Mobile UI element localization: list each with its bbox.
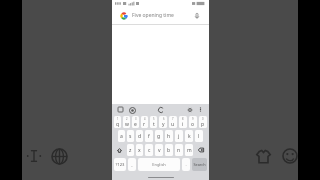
button[interactable]: c <box>145 144 153 156</box>
staticText: i <box>182 121 184 128</box>
staticText: 3 <box>135 117 137 121</box>
button[interactable]: h <box>165 130 173 142</box>
button[interactable]: 5 <box>150 116 157 128</box>
button[interactable]: f <box>145 130 153 142</box>
staticText: 7 <box>172 117 174 121</box>
button[interactable]: . <box>182 158 190 171</box>
staticText: v <box>158 147 161 154</box>
staticText: , <box>131 162 133 168</box>
button[interactable]: n <box>175 144 183 156</box>
staticText: 2 <box>126 117 128 121</box>
button[interactable]: Backspace <box>195 144 207 156</box>
button[interactable]: , <box>128 158 136 171</box>
button[interactable]: 6 <box>159 116 167 128</box>
staticText: 6 <box>163 117 165 121</box>
staticText: p <box>201 121 205 128</box>
button[interactable]: m <box>185 144 193 156</box>
staticText: n <box>177 147 181 154</box>
staticText: 4 <box>144 117 146 121</box>
button[interactable]: Settings <box>185 105 194 114</box>
staticText: u <box>171 121 175 128</box>
staticText: b <box>167 147 171 154</box>
staticText: t <box>153 121 155 128</box>
staticText: j <box>178 133 180 140</box>
button[interactable]: Voice search <box>192 11 201 20</box>
staticText: a <box>120 133 123 140</box>
staticText: w <box>125 121 129 128</box>
button[interactable]: j <box>175 130 183 142</box>
button[interactable]: GIF <box>156 105 166 115</box>
button[interactable]: Text cursor <box>24 146 44 166</box>
staticText: y <box>162 121 165 128</box>
button[interactable]: Search <box>192 158 207 171</box>
button[interactable]: Clipboard <box>116 105 125 114</box>
button[interactable]: Five opening time <box>116 9 205 22</box>
staticText: x <box>138 147 141 154</box>
staticText: z <box>129 147 132 154</box>
staticText: Search <box>193 162 206 167</box>
staticText: s <box>129 133 132 140</box>
button[interactable]: Shift <box>114 144 125 156</box>
button[interactable]: l <box>195 130 203 142</box>
staticText: ?123 <box>115 162 125 168</box>
staticText: 1 <box>117 117 119 121</box>
button[interactable]: More options <box>196 105 205 114</box>
button[interactable]: z <box>127 144 134 156</box>
button[interactable]: 0 <box>199 116 207 128</box>
button[interactable]: 8 <box>179 116 187 128</box>
staticText: 9 <box>192 117 194 121</box>
staticText: e <box>134 121 137 128</box>
staticText: . <box>185 162 187 168</box>
staticText: 0 <box>202 117 204 121</box>
button[interactable]: 9 <box>189 116 197 128</box>
staticText: c <box>148 147 151 154</box>
staticText: h <box>167 133 171 140</box>
button[interactable]: Google Assistant <box>127 105 137 115</box>
staticText: 8 <box>182 117 184 121</box>
button[interactable]: d <box>136 130 143 142</box>
button[interactable]: 2 <box>123 116 130 128</box>
button[interactable]: 4 <box>141 116 148 128</box>
button[interactable]: 1 <box>114 116 121 128</box>
button[interactable]: Language globe <box>47 144 71 168</box>
button[interactable]: v <box>155 144 163 156</box>
button[interactable]: English <box>138 158 180 171</box>
button[interactable]: x <box>136 144 143 156</box>
staticText: l <box>198 133 200 140</box>
button[interactable]: 7 <box>169 116 177 128</box>
button[interactable]: g <box>155 130 163 142</box>
button[interactable]: b <box>165 144 173 156</box>
staticText: f <box>148 133 150 140</box>
button[interactable]: Stickers <box>252 145 274 167</box>
staticText: m <box>187 147 192 154</box>
staticText: q <box>116 121 120 128</box>
button[interactable]: 3 <box>132 116 139 128</box>
staticText: English <box>152 162 166 167</box>
staticText: Five opening time <box>132 12 174 19</box>
button[interactable]: s <box>127 130 134 142</box>
button[interactable]: a <box>118 130 125 142</box>
staticText: d <box>138 133 142 140</box>
button[interactable]: Emoji <box>279 145 301 167</box>
staticText: 5 <box>153 117 155 121</box>
staticText: o <box>191 121 195 128</box>
button[interactable]: ?123 <box>114 158 126 171</box>
staticText: r <box>143 121 146 128</box>
button[interactable]: k <box>185 130 193 142</box>
staticText: k <box>188 133 191 140</box>
staticText: g <box>157 133 161 140</box>
